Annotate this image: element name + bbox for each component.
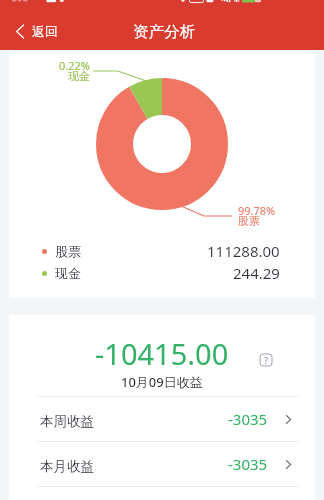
staticText: 资产分析	[133, 22, 195, 42]
button[interactable]: 帮助	[260, 354, 272, 366]
staticText: 现金	[55, 265, 81, 281]
staticText: -3035	[228, 454, 268, 474]
button[interactable]: 返回	[0, 12, 68, 50]
staticText: -3035	[228, 409, 268, 429]
staticText: -10415.00	[95, 334, 229, 373]
staticText: 股票	[238, 214, 260, 228]
staticText: 股票	[55, 243, 81, 259]
staticText: 111288.00	[207, 241, 280, 261]
staticText: 10月09日收益	[121, 373, 203, 391]
staticText: 本月收益	[40, 458, 94, 475]
staticText: 99.78%	[238, 203, 276, 218]
button[interactable]: 本周收益	[9, 397, 315, 441]
staticText: 本周收益	[40, 413, 94, 430]
button[interactable]: 本月收益	[9, 442, 315, 486]
staticText: ?	[264, 354, 268, 366]
staticText: 现金	[68, 69, 90, 83]
staticText: 244.29	[233, 263, 280, 283]
staticText: 0.22%	[59, 58, 90, 73]
staticText: 返回	[32, 23, 58, 39]
